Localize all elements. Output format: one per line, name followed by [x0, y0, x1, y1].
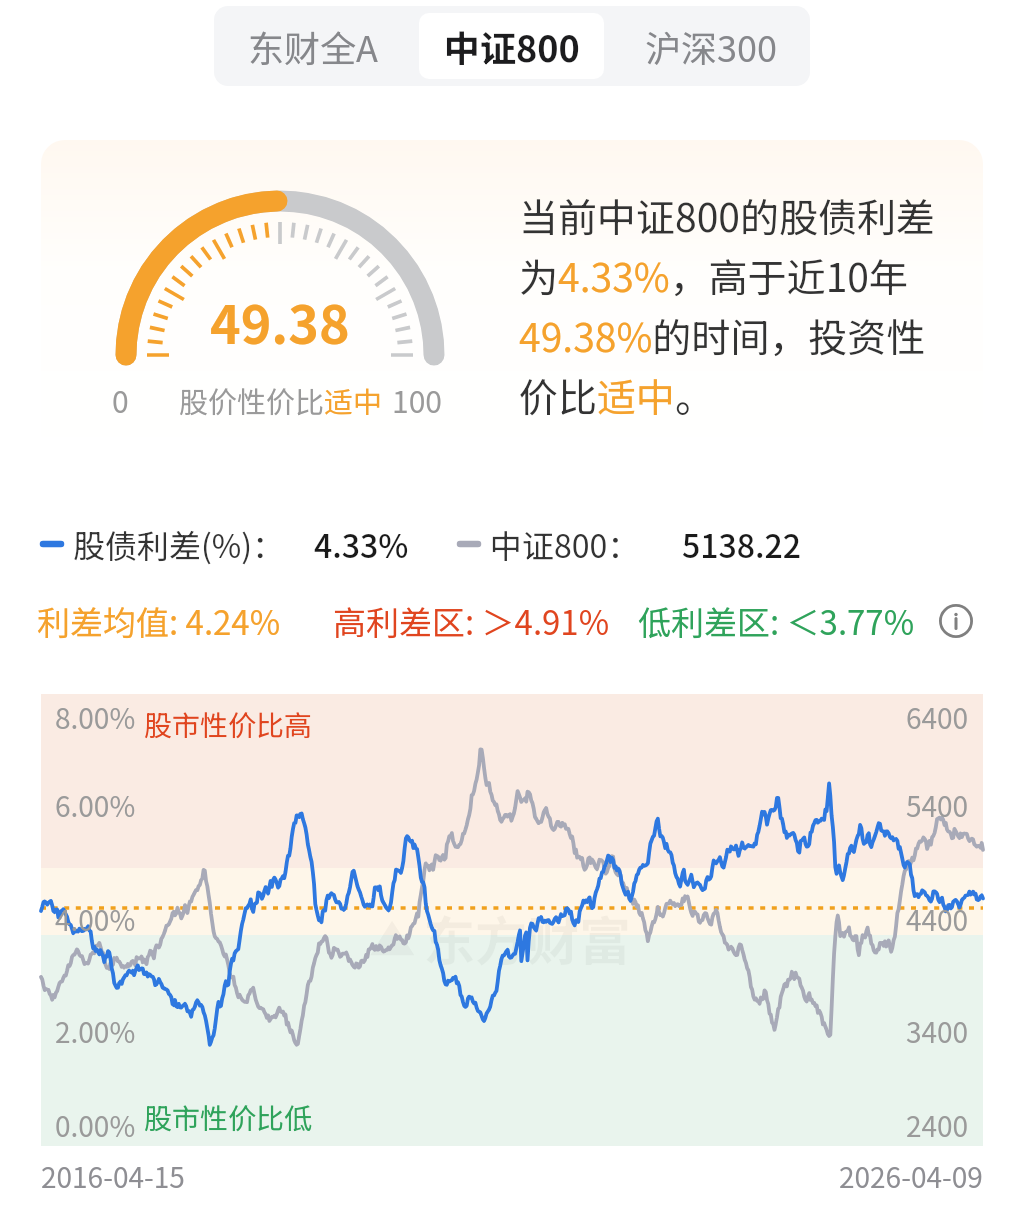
- staticText: 股债利差(%)：: [73, 521, 285, 567]
- staticText: 2400: [906, 1105, 969, 1146]
- staticText: 2.00%: [55, 1011, 136, 1052]
- staticText: 沪深300: [645, 20, 777, 72]
- staticText: 当前中证800的股债利差为4.33%，高于近10年49.38%的时间，投资性价比…: [519, 187, 951, 423]
- staticText: 100: [392, 378, 442, 421]
- staticText: 3400: [906, 1011, 969, 1052]
- staticText: 股市性价比高: [144, 704, 313, 745]
- button[interactable]: 说明: [938, 603, 974, 639]
- staticText: 4.33%: [314, 521, 409, 567]
- button[interactable]: 沪深300: [618, 13, 803, 79]
- staticText: 0.00%: [55, 1105, 136, 1146]
- staticText: 4.00%: [55, 899, 136, 940]
- button[interactable]: 东财全A: [221, 13, 405, 79]
- staticText: 利差均值: 4.24%: [37, 597, 281, 645]
- staticText: 5138.22: [682, 521, 801, 567]
- staticText: 2016-04-15: [41, 1156, 185, 1197]
- staticText: 6400: [906, 697, 969, 738]
- staticText: 股价性价比适中: [179, 379, 383, 421]
- staticText: 5400: [906, 785, 969, 826]
- staticText: 低利差区: ＜3.77%: [638, 597, 915, 645]
- staticText: 49.38: [210, 284, 350, 359]
- staticText: 中证800：: [490, 521, 640, 567]
- staticText: 东财全A: [248, 20, 378, 72]
- staticText: 股市性价比低: [144, 1097, 313, 1138]
- staticText: 高利差区: ＞4.91%: [333, 597, 610, 645]
- staticText: 2026-04-09: [839, 1156, 983, 1197]
- staticText: 4400: [906, 899, 969, 940]
- staticText: 0: [112, 378, 129, 421]
- staticText: 6.00%: [55, 785, 136, 826]
- staticText: 中证800: [444, 20, 580, 72]
- staticText: 8.00%: [55, 697, 136, 738]
- button[interactable]: 中证800: [419, 13, 604, 79]
- staticText: 东方财富: [423, 900, 632, 975]
